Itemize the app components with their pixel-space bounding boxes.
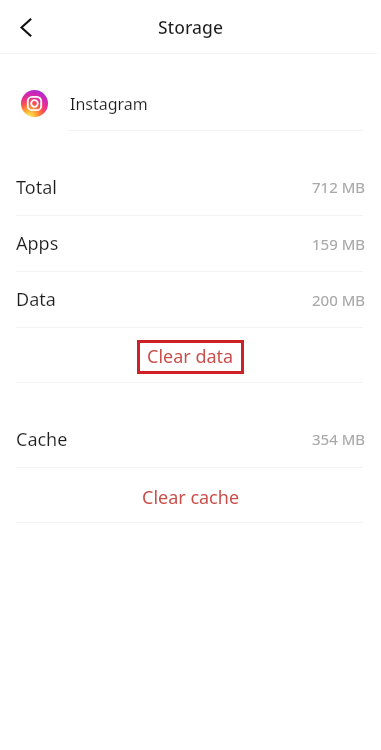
button[interactable]: Apps <box>0 216 381 271</box>
staticText: Instagram <box>70 93 148 115</box>
button[interactable]: Instagram <box>0 77 381 130</box>
staticText: Clear data <box>147 344 234 369</box>
button[interactable]: Cache <box>0 411 381 467</box>
staticText: 712 MB <box>312 177 365 197</box>
staticText: Storage <box>158 15 223 39</box>
staticText: Clear cache <box>142 485 240 510</box>
staticText: Cache <box>16 427 68 452</box>
staticText: Total <box>16 175 57 200</box>
button[interactable]: Total <box>0 159 381 215</box>
staticText: 200 MB <box>312 290 365 310</box>
button[interactable]: Clear cache <box>0 468 381 522</box>
staticText: 159 MB <box>312 234 365 254</box>
staticText: Apps <box>16 231 59 256</box>
staticText: Data <box>16 287 56 312</box>
staticText: 354 MB <box>312 429 365 449</box>
button[interactable]: Data <box>0 272 381 327</box>
button[interactable]: Clear data <box>0 328 381 382</box>
button[interactable]: Back <box>6 7 46 47</box>
